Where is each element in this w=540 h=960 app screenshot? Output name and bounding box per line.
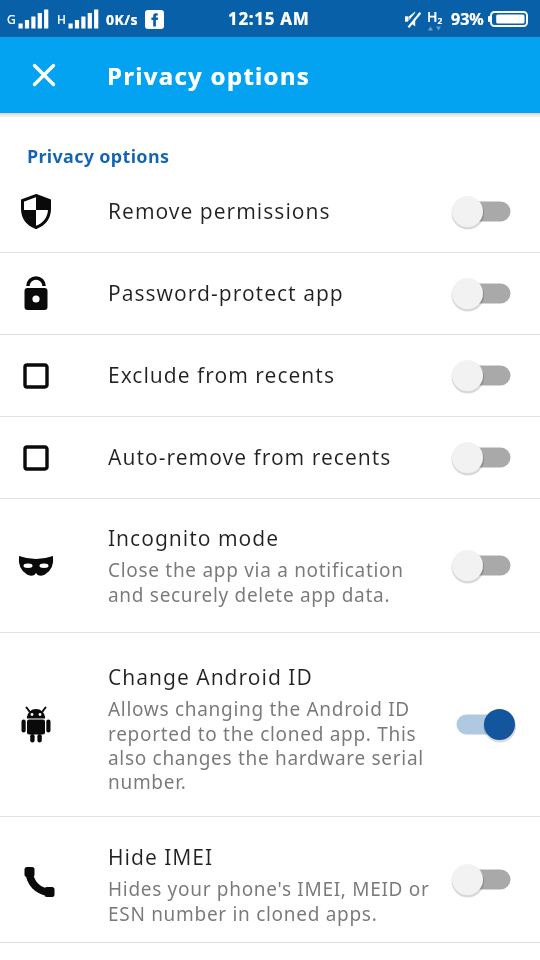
- staticText: Hides your phone's IMEI, MEID or ESN num…: [108, 876, 430, 927]
- staticText: 0K/s: [106, 10, 139, 29]
- button[interactable]: Remove permissions: [0, 171, 540, 252]
- staticText: H: [57, 11, 66, 27]
- staticText: Privacy options: [27, 144, 170, 169]
- button[interactable]: Exclude from recents: [0, 335, 540, 416]
- staticText: Change Android ID: [108, 663, 313, 692]
- staticText: Auto-remove from recents: [108, 443, 392, 472]
- staticText: Privacy options: [107, 59, 311, 92]
- button[interactable]: Change Android ID: [0, 633, 540, 816]
- staticText: H₂: [427, 7, 443, 26]
- staticText: Incognito mode: [108, 524, 280, 553]
- staticText: Exclude from recents: [108, 361, 335, 390]
- button[interactable]: [11, 37, 77, 113]
- staticText: Password-protect app: [108, 279, 344, 308]
- staticText: Close the app via a notification and sec…: [108, 557, 404, 608]
- staticText: Hide IMEI: [108, 843, 214, 872]
- staticText: Allows changing the Android ID reported …: [108, 696, 424, 795]
- staticText: 93%: [451, 8, 484, 30]
- staticText: Remove permissions: [108, 197, 331, 226]
- button[interactable]: Auto-remove from recents: [0, 417, 540, 498]
- button[interactable]: Password-protect app: [0, 253, 540, 334]
- staticText: G: [7, 11, 16, 27]
- button[interactable]: Hide IMEI: [0, 817, 540, 942]
- staticText: 12:15 AM: [228, 7, 310, 30]
- button[interactable]: Incognito mode: [0, 499, 540, 632]
